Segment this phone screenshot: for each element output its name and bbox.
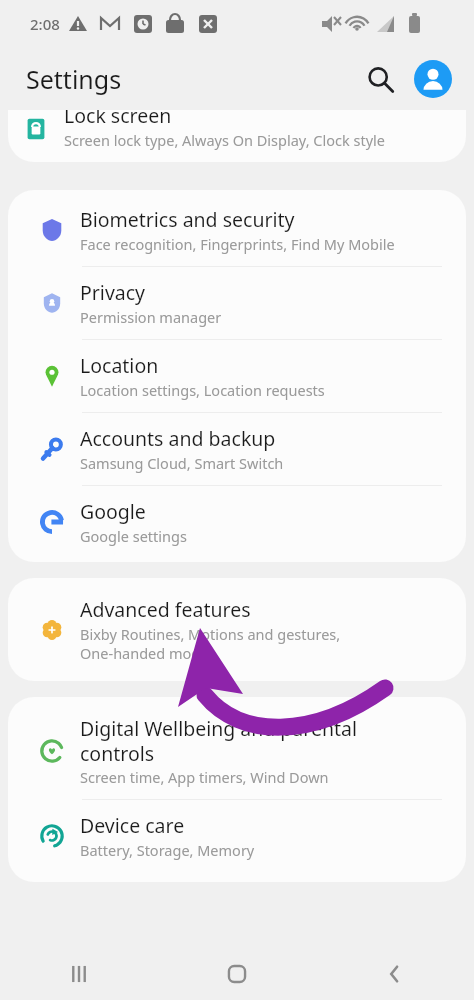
staticText: Location xyxy=(80,352,446,379)
button[interactable]: Search xyxy=(358,57,402,101)
staticText: Face recognition, Fingerprints, Find My … xyxy=(80,234,395,254)
staticText: Screen lock type, Always On Display, Clo… xyxy=(64,130,385,150)
staticText: Screen time, App timers, Wind Down xyxy=(80,767,329,787)
button[interactable]: Device care xyxy=(8,800,466,872)
button[interactable]: Recents xyxy=(0,948,158,1000)
button[interactable]: Accounts and backup xyxy=(8,413,466,485)
button[interactable]: Home xyxy=(158,948,316,1000)
staticText: Biometrics and security xyxy=(80,206,446,233)
staticText: Settings xyxy=(26,62,122,96)
button[interactable]: Lock screen xyxy=(8,110,466,162)
staticText: Advanced features xyxy=(80,596,340,623)
button[interactable]: Back xyxy=(316,948,474,1000)
staticText: Digital Wellbeing and parental controls xyxy=(80,715,400,766)
staticText: Permission manager xyxy=(80,307,222,327)
staticText: Accounts and backup xyxy=(80,425,446,452)
staticText: Google settings xyxy=(80,526,187,546)
button[interactable]: Digital Wellbeing and parental controls xyxy=(8,703,466,799)
staticText: Google xyxy=(80,498,446,525)
staticText: 2:08 xyxy=(30,14,60,34)
staticText: Bixby Routines, Motions and gestures, On… xyxy=(80,624,341,663)
staticText: Device care xyxy=(80,812,446,839)
button[interactable]: Google xyxy=(8,486,466,558)
staticText: Lock screen xyxy=(64,110,172,129)
staticText: Location settings, Location requests xyxy=(80,380,325,400)
button[interactable]: Account xyxy=(413,59,453,99)
button[interactable]: Privacy xyxy=(8,267,466,339)
staticText: Battery, Storage, Memory xyxy=(80,840,255,860)
button[interactable]: Advanced features xyxy=(8,584,466,675)
staticText: Samsung Cloud, Smart Switch xyxy=(80,453,284,473)
button[interactable]: Biometrics and security xyxy=(8,194,466,266)
staticText: Privacy xyxy=(80,279,446,306)
button[interactable]: Location xyxy=(8,340,466,412)
